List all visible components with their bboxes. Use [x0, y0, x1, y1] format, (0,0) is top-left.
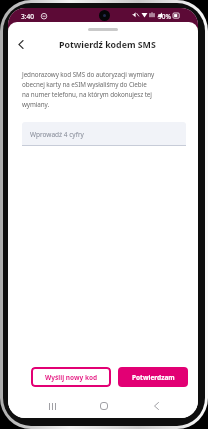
staticText: Potwierdź kodem SMS [59, 39, 156, 51]
staticText: Wprowadź 4 cyfry [30, 130, 84, 139]
button[interactable] [44, 398, 60, 414]
staticText: Potwierdzam [132, 373, 175, 382]
button[interactable] [96, 398, 112, 414]
staticText: Jednorazowy kod SMS do autoryzacji wymia… [22, 70, 155, 108]
button[interactable]: Wprowadź 4 cyfry [22, 122, 186, 146]
staticText: Wyślij nowy kod [45, 373, 98, 382]
staticText: 90% [158, 12, 171, 21]
button[interactable]: Wyślij nowy kod [31, 367, 111, 387]
button[interactable] [148, 398, 164, 414]
staticText: 3:40 [21, 12, 34, 21]
button[interactable]: Potwierdzam [118, 367, 188, 387]
button[interactable] [12, 35, 30, 53]
